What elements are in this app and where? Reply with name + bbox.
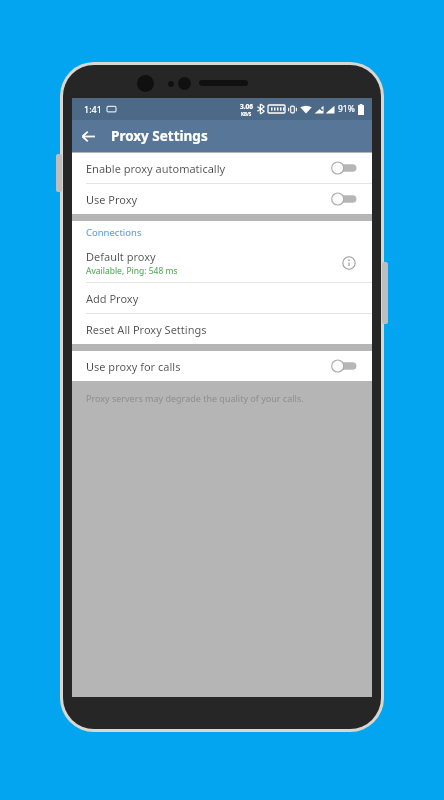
staticText: Use Proxy <box>86 192 331 207</box>
button[interactable]: Reset All Proxy Settings <box>72 314 372 344</box>
staticText: Add Proxy <box>86 291 139 306</box>
staticText: Default proxy <box>86 249 156 264</box>
button[interactable]: Proxy info <box>336 250 362 276</box>
staticText: Available, Ping: 548 ms <box>86 265 178 277</box>
staticText: 1:41 <box>84 103 102 115</box>
button[interactable]: Enable proxy automatically <box>72 153 372 183</box>
button[interactable]: Use proxy for calls <box>72 351 372 381</box>
staticText: 91% <box>338 103 355 115</box>
button[interactable]: Add Proxy <box>72 283 372 313</box>
button[interactable]: Use Proxy <box>72 184 372 214</box>
staticText: Connections <box>86 226 142 239</box>
staticText: Use proxy for calls <box>86 359 331 374</box>
staticText: 3.06 <box>240 102 253 111</box>
button[interactable]: Back <box>72 120 104 152</box>
staticText: Enable proxy automatically <box>86 161 331 176</box>
staticText: KB/S <box>241 111 252 117</box>
staticText: Proxy Settings <box>111 127 208 145</box>
staticText: Reset All Proxy Settings <box>86 322 207 337</box>
staticText: Proxy servers may degrade the quality of… <box>86 392 304 404</box>
button[interactable]: Default proxy <box>72 244 372 282</box>
